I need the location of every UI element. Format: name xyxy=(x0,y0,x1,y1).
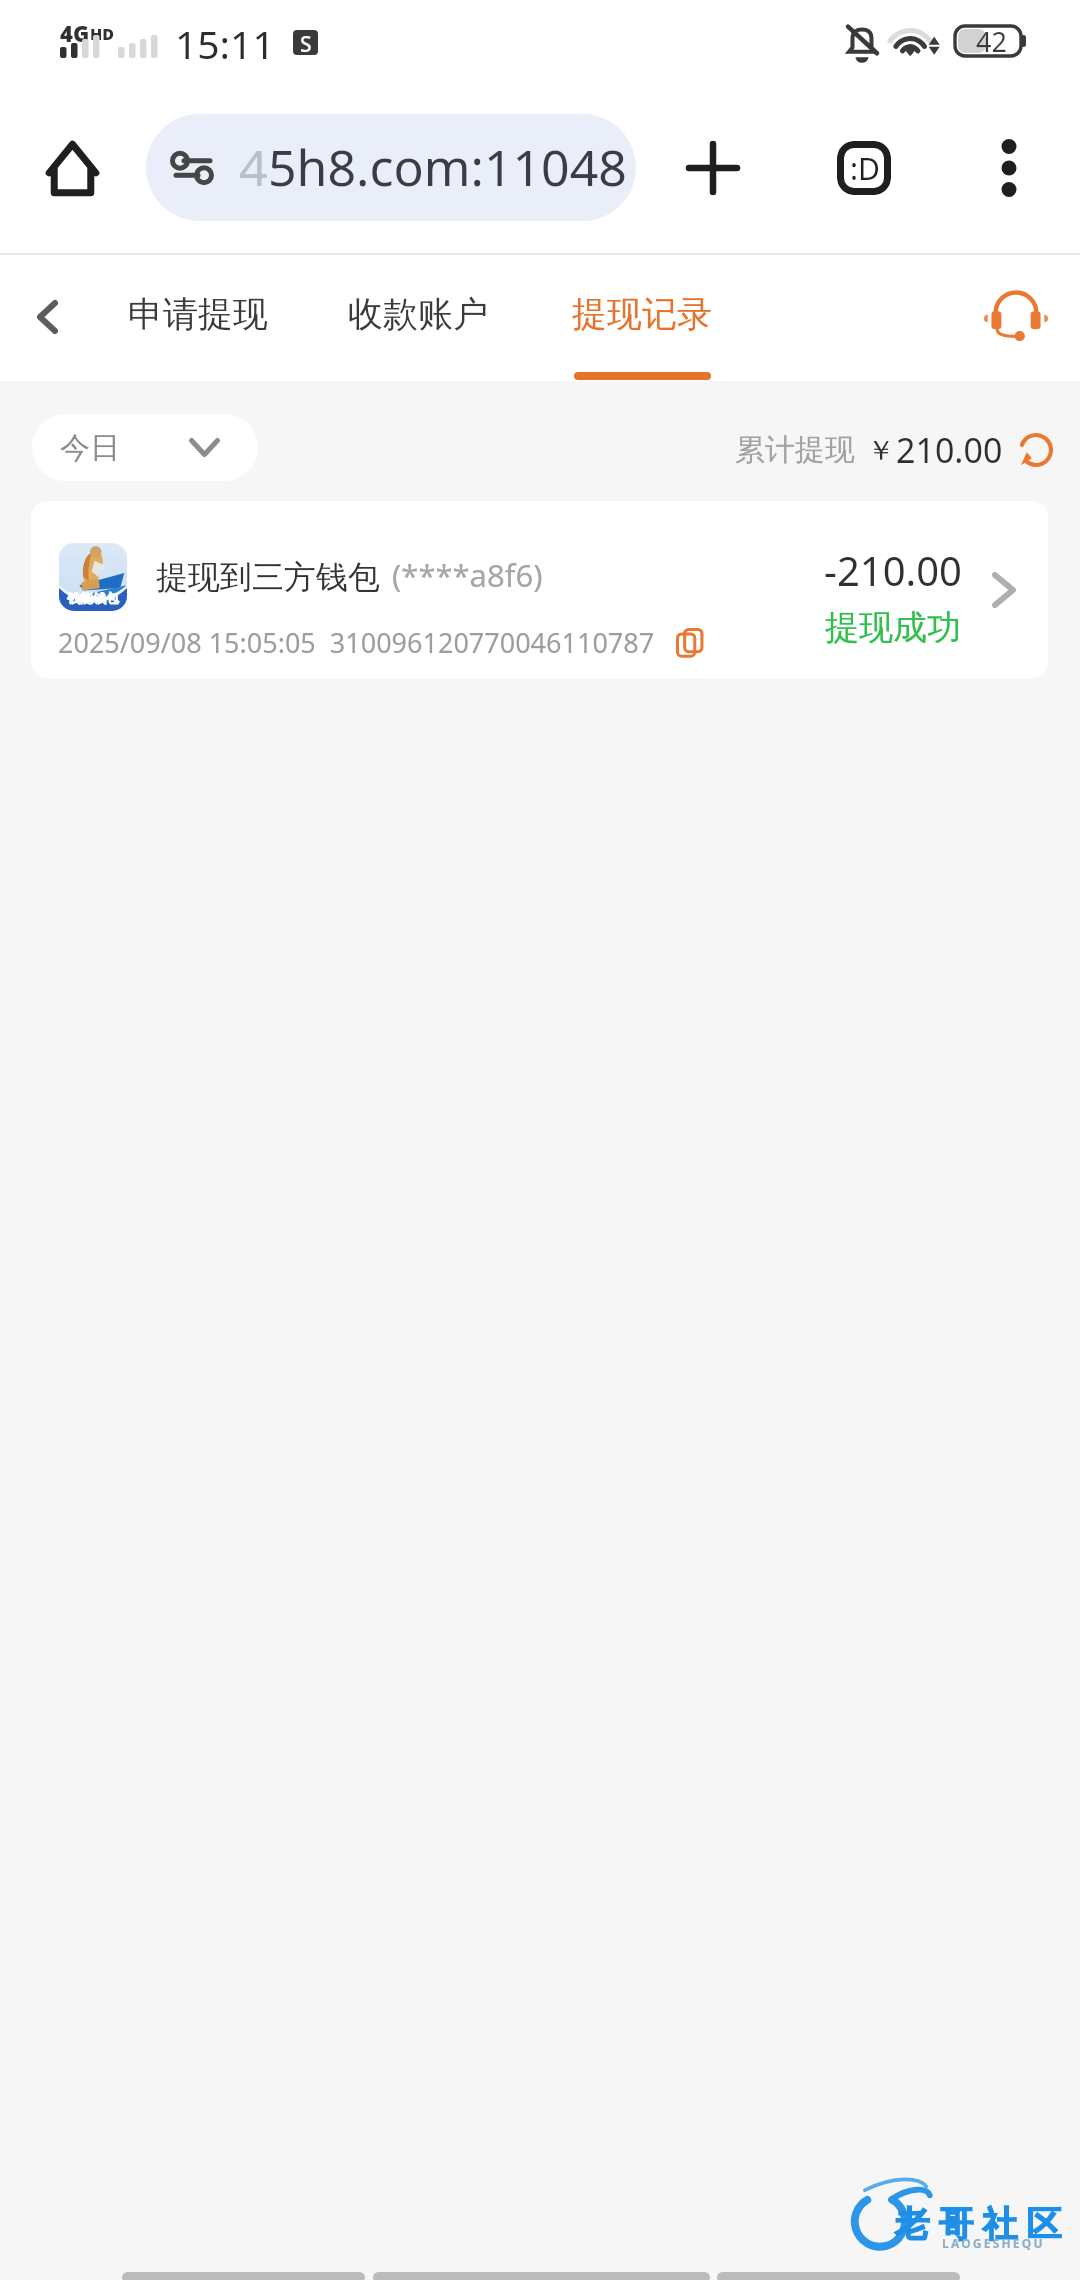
staticText: 钱能钱包 xyxy=(67,590,119,606)
button[interactable]: 钱能钱包 xyxy=(31,501,1048,678)
staticText: 老哥社区 xyxy=(890,2202,1066,2246)
staticText: 申请提现 xyxy=(128,292,268,336)
staticText: 4G xyxy=(60,18,90,48)
button[interactable]: Copy xyxy=(672,626,706,660)
button[interactable]: Refresh xyxy=(1016,430,1056,470)
staticText: ￥ xyxy=(867,433,895,468)
button[interactable]: New tab xyxy=(665,120,761,216)
staticText: 5h8.com:11048 xyxy=(268,133,627,201)
staticText: 提现记录 xyxy=(572,292,712,336)
button[interactable]: Home xyxy=(36,132,108,204)
button[interactable]: 4 xyxy=(146,114,636,221)
button[interactable]: Recents xyxy=(122,2272,365,2280)
staticText: 4 xyxy=(239,133,268,201)
staticText: -210.00 xyxy=(824,543,962,597)
staticText: 提现到三方钱包 xyxy=(156,557,380,597)
button[interactable]: Back xyxy=(717,2272,960,2280)
staticText: 今日 xyxy=(60,429,120,467)
staticText: (****a8f6) xyxy=(392,554,543,596)
staticText: 42 xyxy=(976,23,1007,59)
staticText: 收款账户 xyxy=(348,292,488,336)
staticText: LAOGESHEQU xyxy=(942,2235,1045,2251)
staticText: 15:11 xyxy=(175,17,275,70)
button[interactable]: More options xyxy=(961,120,1057,216)
button[interactable]: Tabs xyxy=(816,120,912,216)
staticText: 2025/09/08 15:05:05 31009612077004611078… xyxy=(58,624,655,661)
staticText: 210.00 xyxy=(896,427,1003,473)
button[interactable]: 申请提现 xyxy=(118,251,278,377)
button[interactable]: 收款账户 xyxy=(338,251,498,377)
staticText: 提现成功 xyxy=(825,606,961,649)
staticText: :D xyxy=(850,148,880,189)
button[interactable]: 今日 xyxy=(32,414,258,481)
button[interactable]: Customer service xyxy=(971,273,1061,363)
staticText: 累计提现 xyxy=(735,431,855,469)
button[interactable]: Back xyxy=(12,282,82,352)
button[interactable]: 提现记录 xyxy=(562,251,722,377)
staticText: S xyxy=(300,30,312,55)
button[interactable]: Home xyxy=(373,2272,710,2280)
staticText: HD xyxy=(90,23,115,45)
